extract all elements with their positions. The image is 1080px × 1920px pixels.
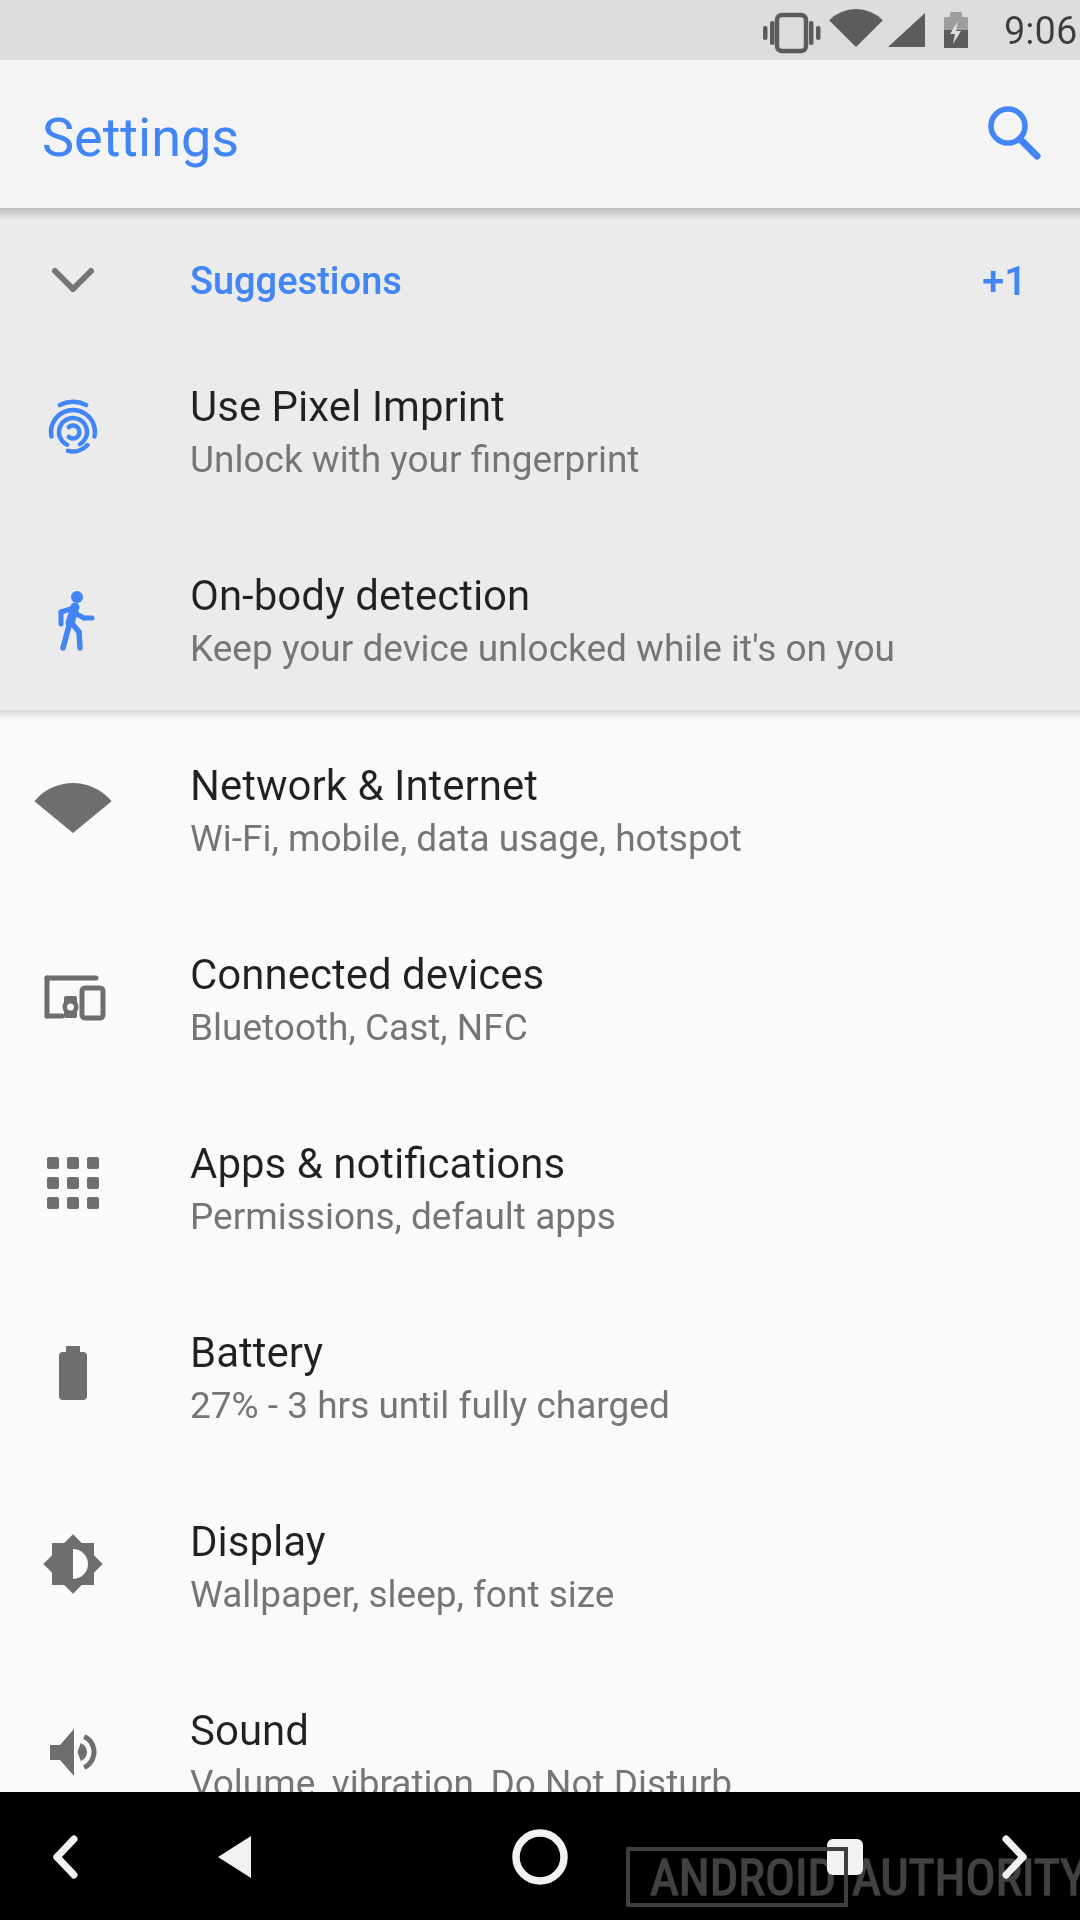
staticText: AUTHORITY bbox=[852, 1849, 1080, 1905]
staticText: Sound bbox=[190, 1706, 309, 1755]
staticText: Bluetooth, Cast, NFC bbox=[190, 1006, 528, 1049]
button[interactable]: Sound bbox=[0, 1655, 1080, 1844]
button[interactable] bbox=[962, 83, 1058, 191]
button[interactable]: Battery bbox=[0, 1277, 1080, 1466]
staticText: Permissions, default apps bbox=[190, 1195, 616, 1238]
staticText: Network & Internet bbox=[190, 761, 539, 810]
button[interactable]: Suggestions bbox=[0, 220, 1080, 331]
button[interactable] bbox=[20, 1810, 110, 1902]
staticText: Unlock with your fingerprint bbox=[190, 438, 640, 481]
staticText: 27% - 3 hrs until fully charged bbox=[190, 1384, 670, 1427]
staticText: Display bbox=[190, 1517, 326, 1566]
staticText: Battery bbox=[190, 1328, 324, 1377]
button[interactable]: Use Pixel Imprint bbox=[0, 331, 1080, 520]
staticText: Wallpaper, sleep, font size bbox=[190, 1573, 615, 1616]
button[interactable]: Network & Internet bbox=[0, 710, 1080, 899]
button[interactable] bbox=[970, 1810, 1060, 1902]
staticText: +1 bbox=[982, 258, 1028, 305]
button[interactable]: Apps & notifications bbox=[0, 1088, 1080, 1277]
button[interactable]: On-body detection bbox=[0, 520, 1080, 709]
staticText: Keep your device unlocked while it's on … bbox=[190, 627, 895, 670]
button[interactable]: Connected devices bbox=[0, 899, 1080, 1088]
staticText: Settings bbox=[42, 106, 240, 169]
staticText: Wi-Fi, mobile, data usage, hotspot bbox=[190, 817, 742, 860]
staticText: 9:06 bbox=[1004, 9, 1078, 54]
button[interactable] bbox=[494, 1810, 586, 1902]
staticText: Suggestions bbox=[190, 259, 402, 304]
staticText: Connected devices bbox=[190, 950, 545, 999]
staticText: Apps & notifications bbox=[190, 1139, 566, 1188]
button[interactable] bbox=[190, 1810, 282, 1902]
staticText: Use Pixel Imprint bbox=[190, 382, 505, 431]
staticText: On-body detection bbox=[190, 571, 531, 620]
button[interactable] bbox=[799, 1810, 891, 1902]
staticText: Volume, vibration, Do Not Disturb bbox=[190, 1762, 733, 1805]
button[interactable]: Display bbox=[0, 1466, 1080, 1655]
staticText: ANDROID bbox=[650, 1849, 836, 1905]
